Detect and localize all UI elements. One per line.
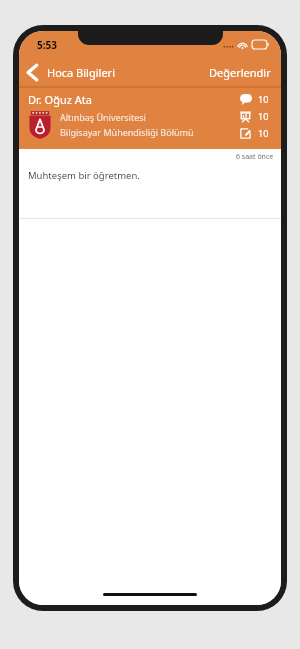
staticText: 6 saat önce bbox=[236, 152, 274, 162]
staticText: Altınbaş Üniversitesi bbox=[60, 111, 146, 123]
button[interactable]: Değerlendir bbox=[199, 61, 281, 84]
staticText: 10 bbox=[258, 110, 271, 122]
staticText: Hoca Bilgileri bbox=[47, 65, 115, 80]
other: Notes bbox=[240, 128, 251, 139]
staticText: Dr. Oğuz Ata bbox=[28, 92, 92, 107]
other: Back bbox=[26, 64, 39, 81]
staticText: Bilgisayar Mühendisliği Bölümü bbox=[60, 126, 194, 138]
staticText: 5:53 bbox=[37, 38, 57, 52]
button[interactable]: Dr. Oğuz Ata bbox=[19, 88, 281, 149]
staticText: 10 bbox=[258, 93, 271, 105]
other: Comments bbox=[240, 94, 252, 105]
staticText: 10 bbox=[258, 127, 271, 139]
staticText: Değerlendir bbox=[209, 65, 271, 80]
button[interactable]: Back bbox=[19, 61, 123, 84]
other: Lectures bbox=[240, 111, 251, 122]
button[interactable]: 6 saat önce bbox=[19, 149, 281, 219]
staticText: Muhteşem bir öğretmen. bbox=[28, 169, 140, 182]
